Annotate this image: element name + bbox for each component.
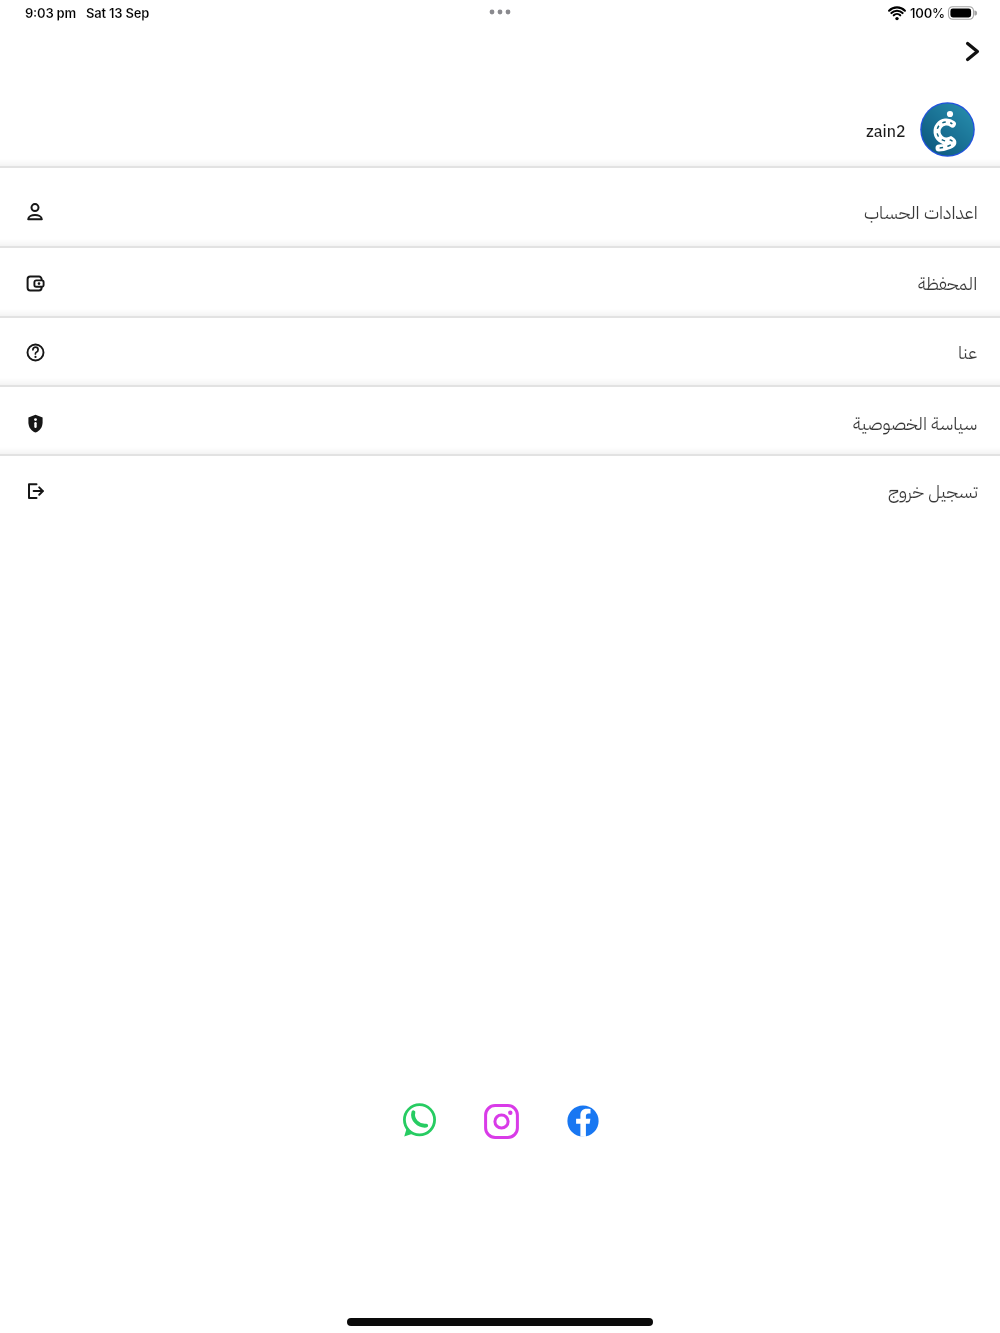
staticText: عنا [958,339,978,366]
staticText: 100% [910,5,945,21]
button[interactable]: سياسة الخصوصية [0,387,1000,456]
button[interactable] [483,1103,519,1139]
staticText: Sat 13 Sep [86,5,150,21]
staticText: المحفظة [918,270,978,297]
staticText: تسجيل خروج [888,478,978,505]
staticText: 9:03 pm [25,5,76,21]
button[interactable]: تسجيل خروج [0,456,1000,526]
button[interactable]: المحفظة [0,248,1000,318]
button[interactable] [565,1103,601,1139]
staticText: zain2 [866,120,906,144]
button[interactable]: عنا [0,318,1000,387]
button[interactable]: zain2 [866,102,975,157]
staticText: سياسة الخصوصية [853,410,978,437]
button[interactable] [401,1103,437,1139]
staticText: اعدادات الحساب [864,199,978,226]
button[interactable] [956,35,988,67]
button[interactable]: اعدادات الحساب [0,168,1000,248]
